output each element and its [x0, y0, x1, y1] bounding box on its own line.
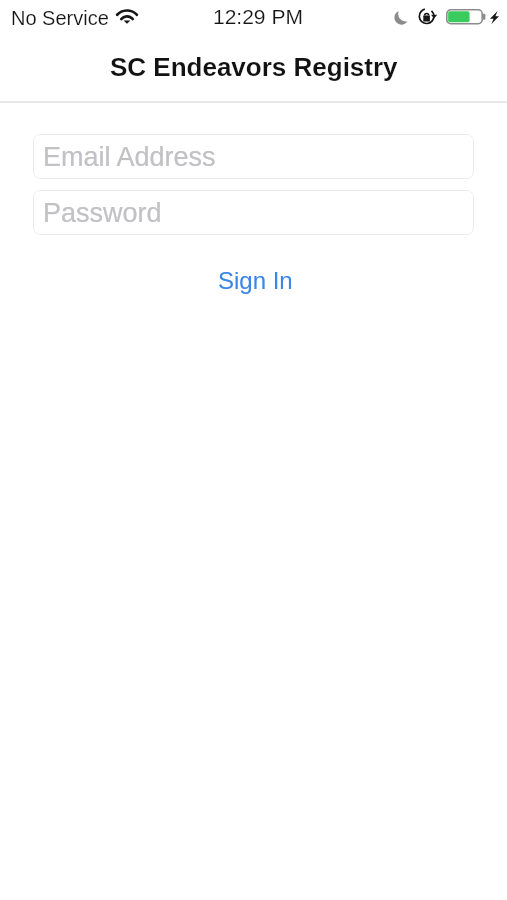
- staticText: SC Endeavors Registry: [110, 52, 398, 81]
- button[interactable]: Sign In: [208, 263, 303, 298]
- button[interactable]: Email Address: [33, 134, 474, 179]
- staticText: No Service: [11, 7, 109, 29]
- staticText: Password: [43, 198, 162, 228]
- other: Charging: [490, 11, 500, 25]
- staticText: Email Address: [43, 142, 216, 172]
- other: Rotation Lock: [419, 7, 438, 25]
- staticText: Sign In: [218, 267, 293, 294]
- button[interactable]: Password: [33, 190, 474, 235]
- staticText: 12:29 PM: [213, 5, 303, 28]
- other: Battery: [446, 9, 486, 25]
- other: Wi-Fi: [116, 8, 138, 25]
- other: Do Not Disturb: [394, 10, 409, 25]
